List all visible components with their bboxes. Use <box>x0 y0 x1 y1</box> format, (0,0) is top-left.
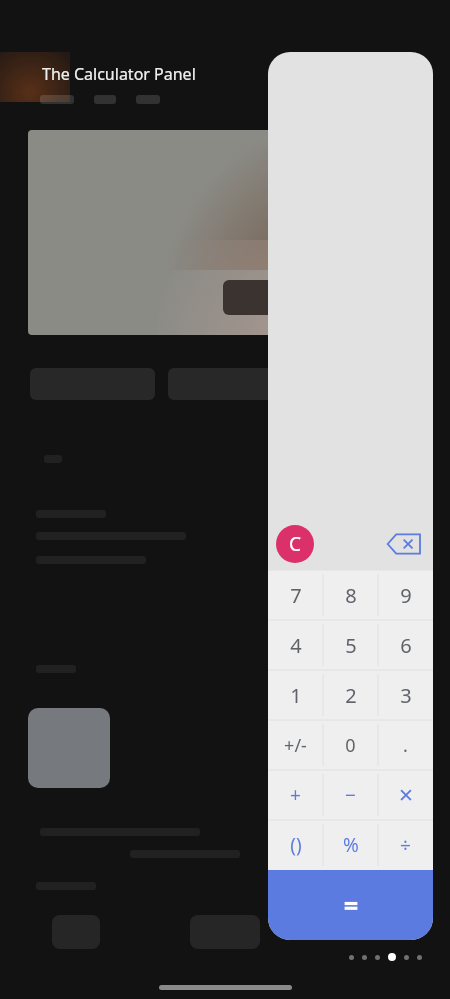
staticText: 7 <box>290 582 302 609</box>
staticText: +/- <box>284 733 307 758</box>
button[interactable]: 1 <box>268 670 323 720</box>
staticText: 9 <box>400 582 412 609</box>
staticText: . <box>403 733 408 758</box>
button[interactable]: 2 <box>323 670 378 720</box>
button[interactable]: % <box>323 820 378 870</box>
button[interactable]: Backspace <box>384 528 424 560</box>
button[interactable]: 7 <box>268 570 323 620</box>
button[interactable]: 4 <box>268 620 323 670</box>
button[interactable]: The Calculator Panel <box>42 63 196 85</box>
staticText: 2 <box>345 682 357 709</box>
button[interactable]: . <box>378 720 433 770</box>
button[interactable]: ✕ <box>378 770 433 820</box>
staticText: 4 <box>290 632 302 659</box>
button[interactable]: 6 <box>378 620 433 670</box>
button[interactable]: 5 <box>323 620 378 670</box>
staticText: 0 <box>345 733 356 758</box>
button[interactable]: 0 <box>323 720 378 770</box>
staticText: 6 <box>400 632 412 659</box>
staticText: ✕ <box>398 784 414 806</box>
button[interactable]: 9 <box>378 570 433 620</box>
button[interactable]: C <box>276 525 314 563</box>
staticText: 5 <box>345 632 357 659</box>
staticText: () <box>290 832 302 858</box>
button[interactable]: + <box>268 770 323 820</box>
button[interactable]: () <box>268 820 323 870</box>
staticText: ÷ <box>400 832 411 858</box>
staticText: 1 <box>290 682 302 709</box>
staticText: The Calculator Panel <box>42 63 196 85</box>
button[interactable]: ÷ <box>378 820 433 870</box>
staticText: % <box>343 832 359 858</box>
staticText: + <box>290 782 301 808</box>
button[interactable]: +/- <box>268 720 323 770</box>
staticText: 3 <box>400 682 412 709</box>
staticText: 8 <box>345 582 357 609</box>
staticText: C <box>289 531 302 557</box>
button[interactable]: 3 <box>378 670 433 720</box>
button[interactable]: 8 <box>323 570 378 620</box>
button[interactable] <box>345 953 426 961</box>
staticText: − <box>345 782 356 808</box>
button[interactable]: − <box>323 770 378 820</box>
button[interactable] <box>268 870 433 940</box>
